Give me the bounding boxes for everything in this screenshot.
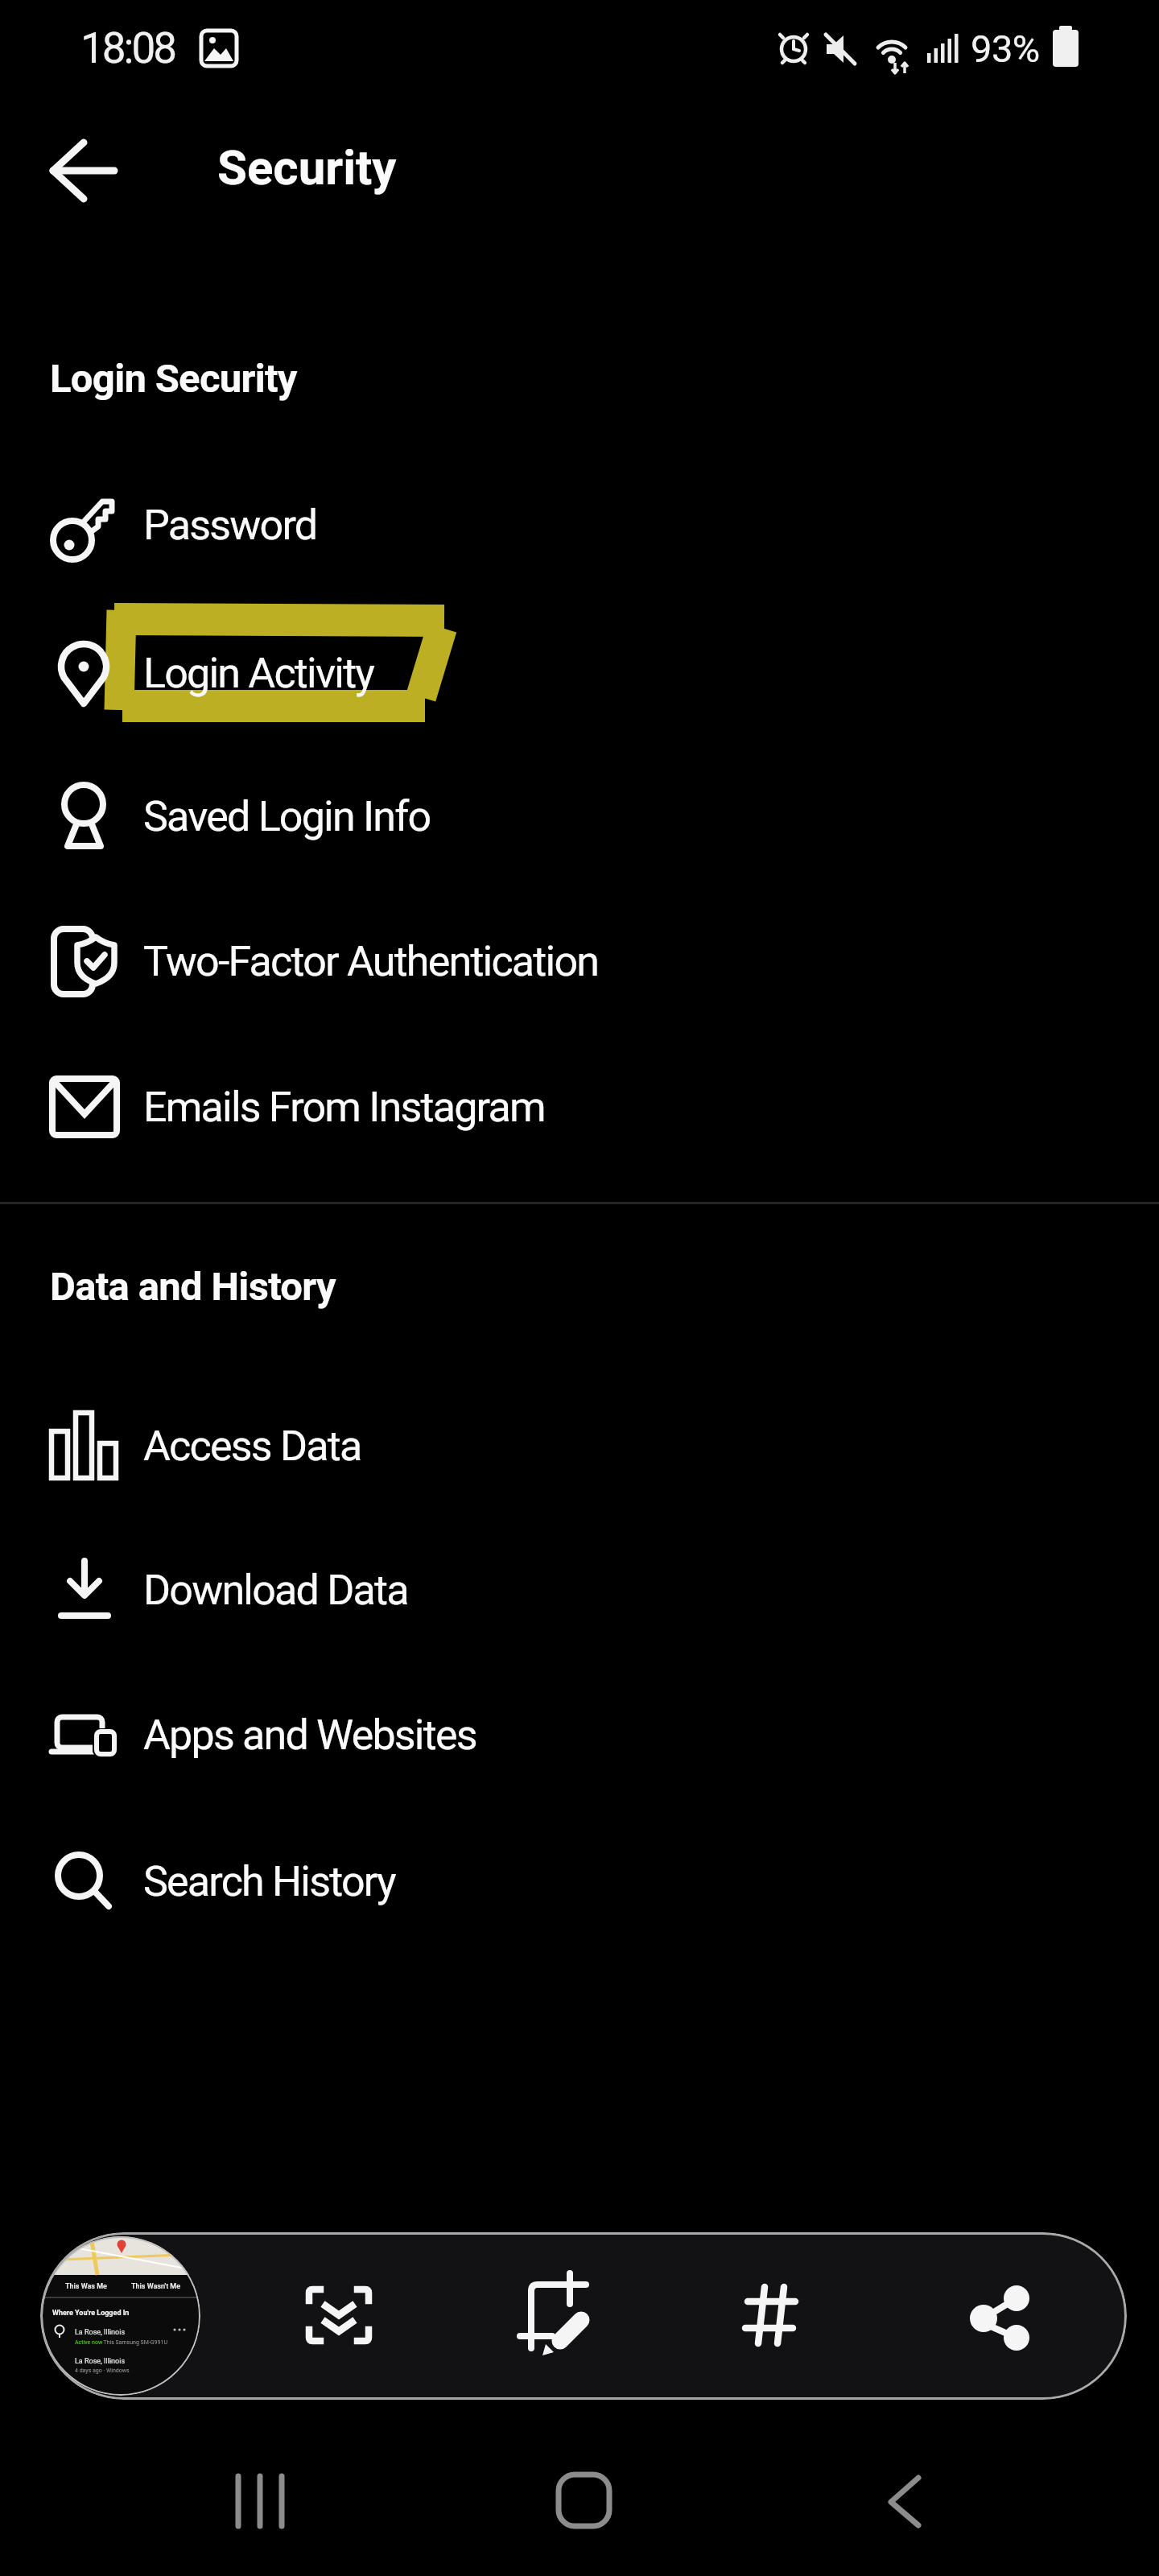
button[interactable]: [505, 2267, 602, 2363]
button[interactable]: Password: [0, 464, 1159, 585]
staticText: Download Data: [143, 1566, 408, 1615]
staticText: Apps and Websites: [143, 1711, 476, 1760]
button[interactable]: Search History: [0, 1821, 1159, 1942]
button[interactable]: Two-Factor Authentication: [0, 901, 1159, 1022]
button[interactable]: [209, 2455, 306, 2552]
staticText: Security: [217, 139, 397, 196]
button[interactable]: [535, 2455, 632, 2552]
staticText: Two-Factor Authentication: [143, 937, 599, 986]
button[interactable]: Login Activity: [0, 613, 1159, 733]
staticText: Emails From Instagram: [143, 1083, 545, 1132]
button[interactable]: [938, 2267, 1035, 2363]
staticText: 93%: [971, 27, 1040, 71]
staticText: Search History: [143, 1857, 395, 1906]
button[interactable]: Emails From Instagram: [0, 1046, 1159, 1167]
button[interactable]: This Was Me: [41, 2236, 200, 2396]
staticText: Data and History: [50, 1264, 336, 1310]
staticText: · This Samsung SM-G991U: [101, 2339, 167, 2346]
button[interactable]: Saved Login Info: [0, 756, 1159, 877]
button[interactable]: Apps and Websites: [0, 1674, 1159, 1795]
staticText: Login Activity: [143, 649, 374, 698]
staticText: This Was Me: [65, 2282, 107, 2291]
staticText: Active now: [75, 2339, 103, 2346]
staticText: 18:08: [80, 23, 175, 73]
staticText: Password: [143, 501, 317, 550]
button[interactable]: [45, 135, 122, 206]
staticText: Where You're Logged In: [52, 2309, 130, 2318]
staticText: This Wasn't Me: [131, 2282, 181, 2291]
staticText: La Rose, Illinois: [75, 2357, 126, 2366]
button[interactable]: Download Data: [0, 1529, 1159, 1650]
button[interactable]: [291, 2267, 387, 2363]
staticText: Login Security: [50, 356, 297, 402]
button[interactable]: [857, 2455, 954, 2552]
button[interactable]: Access Data: [0, 1385, 1159, 1506]
staticText: Saved Login Info: [143, 792, 431, 841]
staticText: Access Data: [143, 1422, 361, 1471]
button[interactable]: [723, 2267, 819, 2363]
staticText: 4 days ago · Windows: [75, 2368, 130, 2374]
staticText: La Rose, Illinois: [75, 2328, 126, 2337]
